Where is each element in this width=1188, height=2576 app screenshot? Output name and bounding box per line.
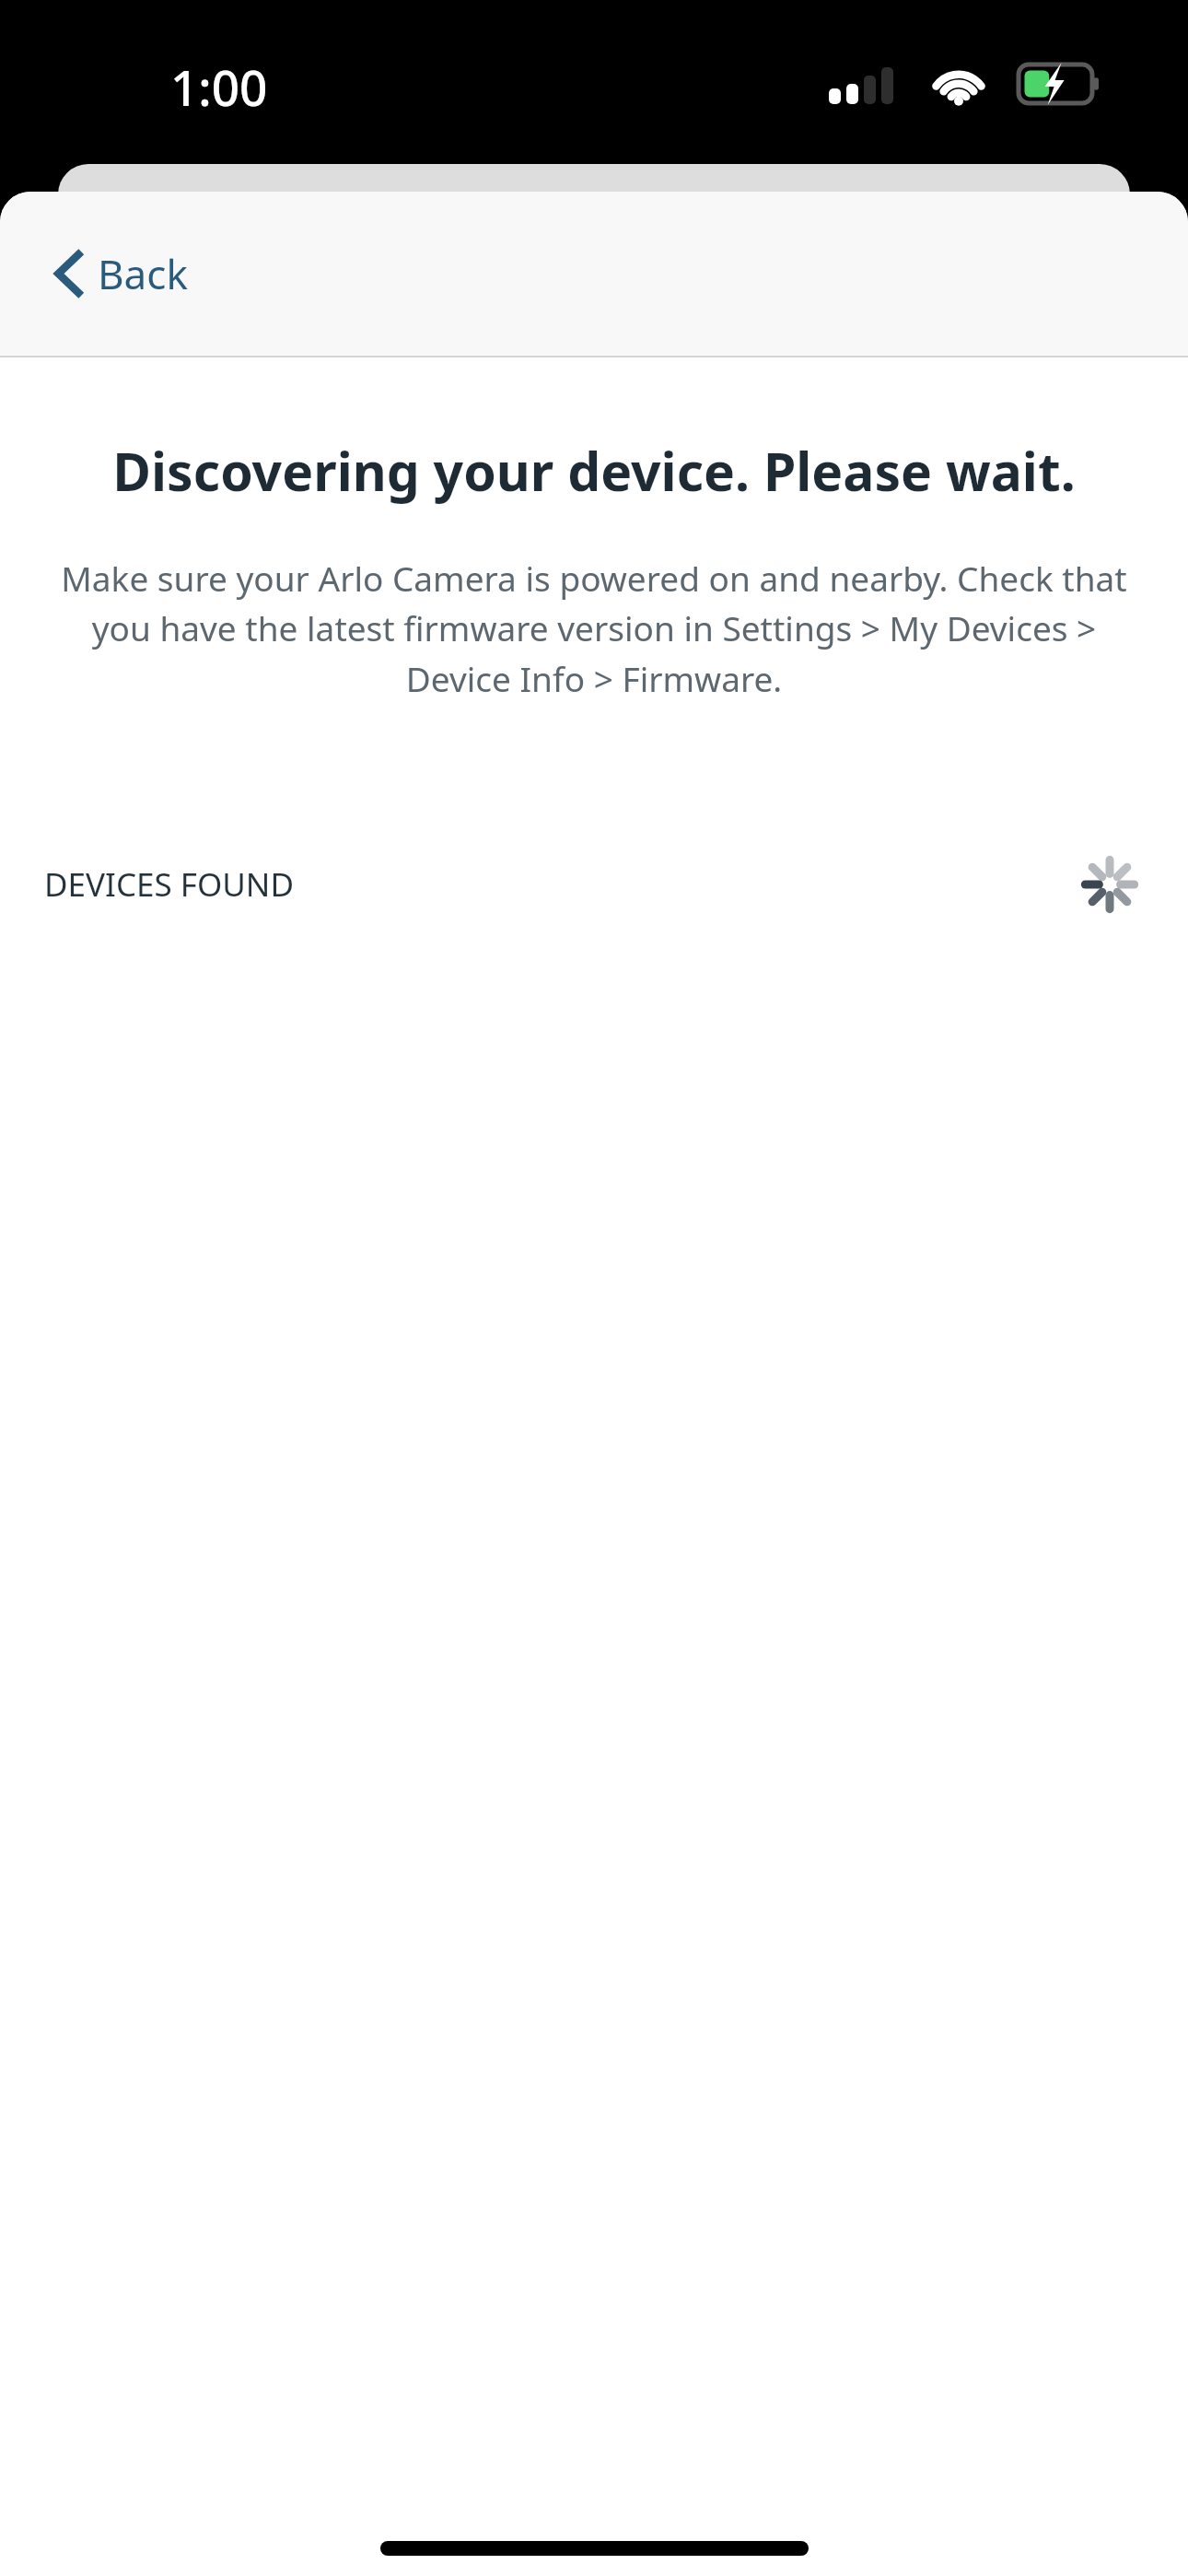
staticText: DEVICES FOUND <box>44 862 295 907</box>
button[interactable]: Back <box>44 233 197 314</box>
staticText: Discovering your device. Please wait. <box>81 435 1107 507</box>
other: Loading <box>1083 858 1136 911</box>
staticText: Make sure your Arlo Camera is powered on… <box>61 555 1127 702</box>
staticText: 1:00 <box>170 53 268 120</box>
staticText: Back <box>98 246 188 301</box>
